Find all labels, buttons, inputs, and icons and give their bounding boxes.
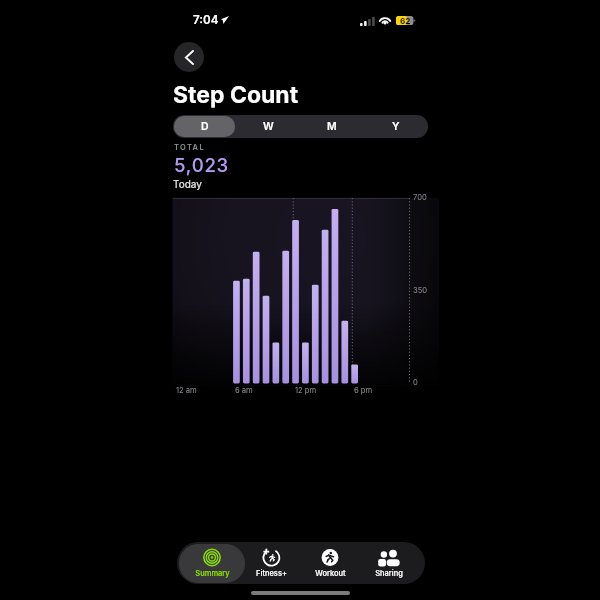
staticText: Workout — [315, 569, 346, 578]
button[interactable]: Y — [365, 116, 427, 137]
button[interactable]: W — [237, 116, 299, 137]
staticText: 6 am — [235, 386, 253, 395]
button[interactable]: M — [301, 116, 363, 137]
staticText: Today — [173, 178, 202, 190]
button[interactable]: Workout — [297, 544, 363, 583]
staticText: 6 pm — [354, 386, 373, 395]
button[interactable]: Fitness+ — [238, 544, 304, 583]
staticText: 350 — [413, 286, 428, 295]
staticText: 700 — [413, 193, 427, 202]
button[interactable]: D — [174, 116, 235, 137]
staticText: 12 am — [176, 386, 197, 395]
staticText: Sharing — [375, 569, 403, 578]
staticText: D — [201, 120, 209, 133]
staticText: 62 — [400, 16, 411, 25]
staticText: Y — [392, 120, 400, 133]
button[interactable]: Summary — [179, 544, 245, 583]
staticText: 7:04 — [193, 13, 219, 27]
staticText: 0 — [413, 378, 418, 387]
staticText: Fitness+ — [256, 569, 287, 578]
staticText: Step Count — [173, 81, 299, 109]
staticText: 12 pm — [295, 386, 317, 395]
staticText: TOTAL — [174, 143, 205, 152]
staticText: 5,023 — [174, 154, 230, 177]
staticText: W — [263, 120, 274, 133]
staticText: M — [327, 120, 337, 133]
button[interactable]: Back — [174, 42, 204, 72]
staticText: Summary — [195, 569, 230, 578]
button[interactable]: Sharing — [356, 544, 422, 583]
